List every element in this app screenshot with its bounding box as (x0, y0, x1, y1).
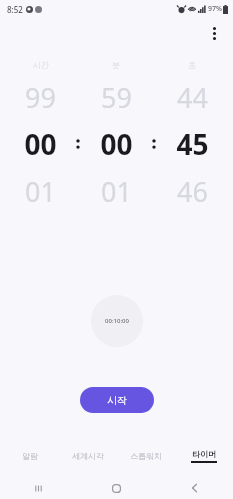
staticText: 스톱워치 (130, 451, 162, 461)
staticText: 00 (100, 125, 133, 163)
button[interactable]: 00:10:00 (91, 295, 143, 347)
staticText: 59 (101, 79, 132, 116)
staticText: 97% (208, 4, 222, 14)
staticText: 초 (188, 60, 196, 70)
staticText: 분 (112, 60, 120, 70)
button[interactable]: 99 (10, 74, 71, 214)
button[interactable]: 알람 (0, 443, 59, 469)
staticText: 타이머 (192, 449, 216, 459)
staticText: 00 (24, 125, 57, 163)
staticText: 01 (101, 173, 132, 210)
staticText: 01 (25, 173, 56, 210)
button[interactable]: 세계시각 (59, 443, 117, 469)
staticText: 44 (177, 79, 208, 116)
staticText: 46 (177, 173, 208, 210)
staticText: 시간 (33, 60, 49, 70)
button[interactable]: Back (155, 477, 233, 499)
button[interactable]: 시작 (80, 387, 154, 413)
staticText: 8:52 (7, 4, 23, 15)
button[interactable]: 타이머 (175, 443, 233, 469)
staticText: 99 (25, 79, 56, 116)
button[interactable]: More options (201, 20, 227, 46)
button[interactable]: Recents (0, 477, 77, 499)
button[interactable]: Home (77, 477, 155, 499)
staticText: 45 (176, 125, 209, 163)
staticText: 알람 (22, 451, 38, 461)
staticText: 세계시각 (72, 451, 104, 461)
button[interactable]: 스톱워치 (117, 443, 175, 469)
staticText: 00:10:00 (105, 317, 129, 325)
staticText: 시작 (107, 394, 127, 407)
button[interactable]: 59 (85, 74, 147, 214)
button[interactable]: 44 (161, 74, 223, 214)
